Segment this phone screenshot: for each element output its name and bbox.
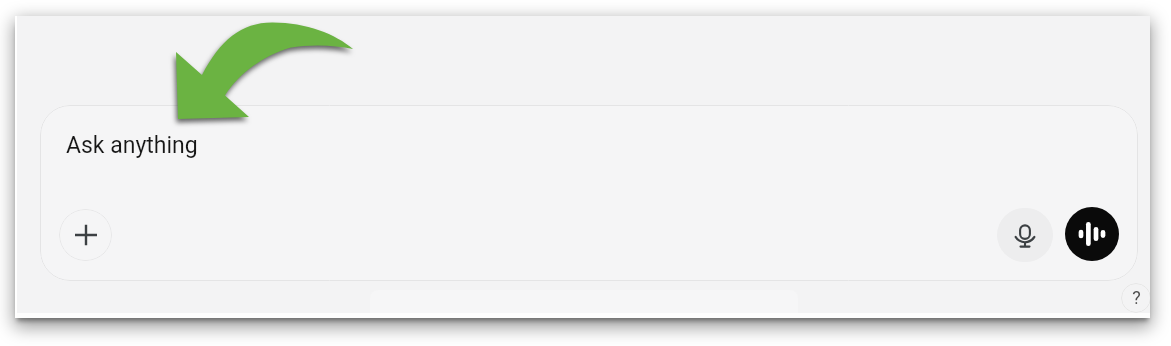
button[interactable]: Help (1121, 283, 1150, 313)
staticText: Ask anything (66, 132, 198, 159)
button[interactable]: Voice input (997, 208, 1053, 262)
button[interactable] (40, 105, 1138, 281)
button[interactable]: Live voice mode (1065, 207, 1119, 261)
button[interactable]: Add attachment (59, 209, 112, 261)
staticText: ? (1132, 287, 1141, 308)
